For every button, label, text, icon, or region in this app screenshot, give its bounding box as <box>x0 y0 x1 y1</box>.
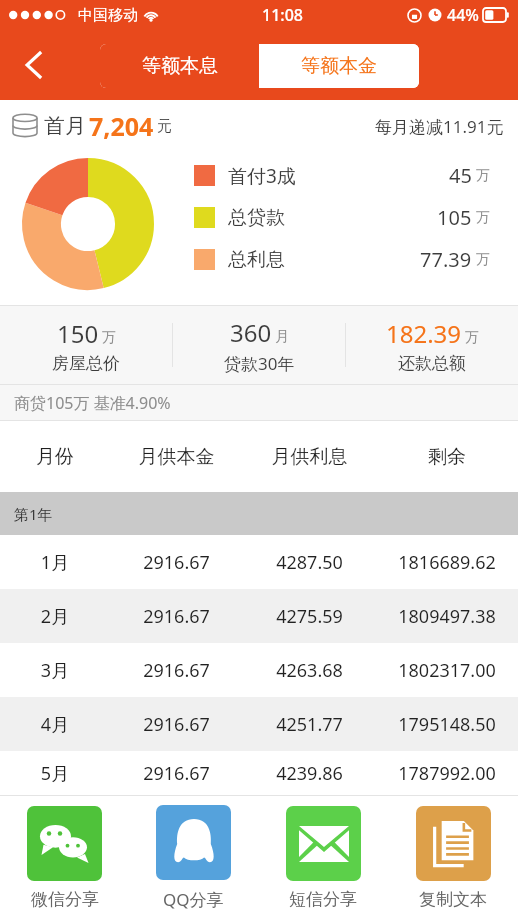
staticText: 总利息 <box>228 248 285 272</box>
staticText: 4239.86 <box>243 761 376 786</box>
staticText: 3月 <box>0 658 110 683</box>
staticText: 剩余 <box>376 445 518 469</box>
staticText: 1816689.62 <box>376 550 518 575</box>
staticText: 等额本金 <box>301 54 377 78</box>
staticText: 月供利息 <box>243 445 376 469</box>
button[interactable]: QQ分享 <box>129 796 258 920</box>
staticText: 7,204 <box>89 109 154 143</box>
staticText: 105 <box>437 204 472 231</box>
button[interactable]: 微信分享 <box>0 796 129 920</box>
staticText: 元 <box>157 117 172 136</box>
staticText: 万 <box>102 329 116 347</box>
staticText: 2916.67 <box>110 658 243 683</box>
button[interactable]: 返回 <box>12 42 58 88</box>
button[interactable]: 短信分享 <box>258 796 388 920</box>
staticText: 45 <box>449 162 472 189</box>
staticText: 微信分享 <box>31 889 99 910</box>
staticText: 44% <box>447 4 479 26</box>
staticText: 1795148.50 <box>376 712 518 737</box>
staticText: 万 <box>476 209 490 227</box>
staticText: 4275.59 <box>243 604 376 629</box>
staticText: 2916.67 <box>110 761 243 786</box>
staticText: QQ分享 <box>163 888 224 911</box>
staticText: 万 <box>476 167 490 185</box>
staticText: 150 <box>57 317 99 350</box>
staticText: 1809497.38 <box>376 604 518 629</box>
staticText: 77.39 <box>420 246 472 273</box>
button[interactable]: 3月 <box>0 643 518 697</box>
staticText: 1802317.00 <box>376 658 518 683</box>
staticText: 2916.67 <box>110 604 243 629</box>
staticText: 首付3成 <box>228 163 296 189</box>
staticText: 1月 <box>0 550 110 575</box>
staticText: 4287.50 <box>243 550 376 575</box>
staticText: 月份 <box>0 445 110 469</box>
staticText: 总贷款 <box>228 206 285 230</box>
button[interactable]: 等额本息 <box>100 44 259 88</box>
staticText: 11:08 <box>262 4 303 26</box>
staticText: 第1年 <box>14 504 53 524</box>
button[interactable]: 4月 <box>0 697 518 751</box>
staticText: 2916.67 <box>110 712 243 737</box>
button[interactable]: 1月 <box>0 535 518 589</box>
staticText: 月供本金 <box>110 445 243 469</box>
staticText: 360 <box>230 316 272 349</box>
staticText: 4263.68 <box>243 658 376 683</box>
staticText: 2916.67 <box>110 550 243 575</box>
staticText: 5月 <box>0 761 110 786</box>
staticText: 商贷105万 基准4.90% <box>14 392 171 414</box>
staticText: 万 <box>465 329 479 347</box>
staticText: 还款总额 <box>398 353 466 374</box>
button[interactable]: 等额本金 <box>259 44 419 88</box>
staticText: 中国移动 <box>78 6 138 25</box>
button[interactable]: 2月 <box>0 589 518 643</box>
staticText: 4月 <box>0 712 110 737</box>
staticText: 月 <box>275 328 289 346</box>
staticText: 2月 <box>0 604 110 629</box>
staticText: 房屋总价 <box>52 353 120 374</box>
staticText: 182.39 <box>386 317 462 350</box>
staticText: 等额本息 <box>142 54 218 78</box>
staticText: 每月递减11.91元 <box>375 115 504 138</box>
staticText: 贷款30年 <box>224 352 295 375</box>
staticText: 4251.77 <box>243 712 376 737</box>
staticText: 短信分享 <box>289 889 357 910</box>
staticText: 首月 <box>44 113 86 139</box>
staticText: 万 <box>476 251 490 269</box>
button[interactable]: 5月 <box>0 751 518 795</box>
staticText: 复制文本 <box>419 889 487 910</box>
staticText: 1787992.00 <box>376 761 518 786</box>
button[interactable]: 复制文本 <box>388 796 518 920</box>
